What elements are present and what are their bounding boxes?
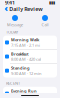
staticText: ▮▮▮	[49, 0, 55, 5]
staticText: Morning Walk	[11, 37, 39, 42]
button[interactable]: Evening Run	[3, 87, 57, 98]
staticText: 7:15 AM · 2.1 mi	[11, 42, 40, 48]
staticText: Message	[7, 22, 23, 27]
staticText: Call	[41, 22, 48, 27]
staticText: 9:30 AM · 12 min	[11, 71, 41, 76]
staticText: Breakfast	[11, 51, 29, 56]
staticText: TODAY	[6, 29, 18, 35]
staticText: Daily Review	[9, 5, 42, 13]
button[interactable]: Standing	[3, 64, 57, 77]
button[interactable]: Message	[0, 15, 30, 27]
button[interactable]: Breakfast	[3, 50, 57, 63]
button[interactable]: Morning Walk	[3, 36, 57, 49]
staticText: RECENT	[6, 80, 20, 86]
staticText: 6:05 PM · 3.4 mi	[11, 94, 39, 98]
staticText: 8:00 AM · 420 cal	[11, 57, 41, 62]
staticText: Standing	[11, 65, 30, 71]
staticText: Evening Run	[11, 88, 37, 94]
staticText: 9:41	[5, 0, 15, 6]
button[interactable]: Call	[30, 15, 60, 27]
button[interactable]: Daily Review	[4, 5, 42, 13]
